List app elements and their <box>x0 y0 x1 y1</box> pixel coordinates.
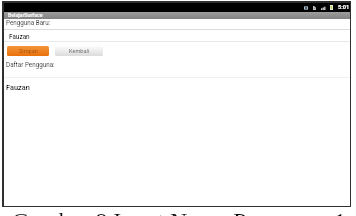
staticText: BelajarSurface <box>8 12 43 18</box>
staticText: Simpan <box>19 48 38 55</box>
staticText: Daftar Pengguna: <box>6 61 55 68</box>
staticText: Kembali <box>69 48 90 55</box>
staticText: 5:01 <box>338 4 350 11</box>
other: Status icons <box>304 4 350 11</box>
staticText: Pengguna Baru: <box>6 19 51 26</box>
button[interactable]: Kembali <box>55 46 103 56</box>
button[interactable]: Fauzan <box>6 83 352 92</box>
staticText: Gambar 8 Input Nama Pengguna 1 <box>12 208 346 216</box>
staticText: Fauzan <box>9 33 30 41</box>
button[interactable]: Simpan <box>7 46 49 56</box>
